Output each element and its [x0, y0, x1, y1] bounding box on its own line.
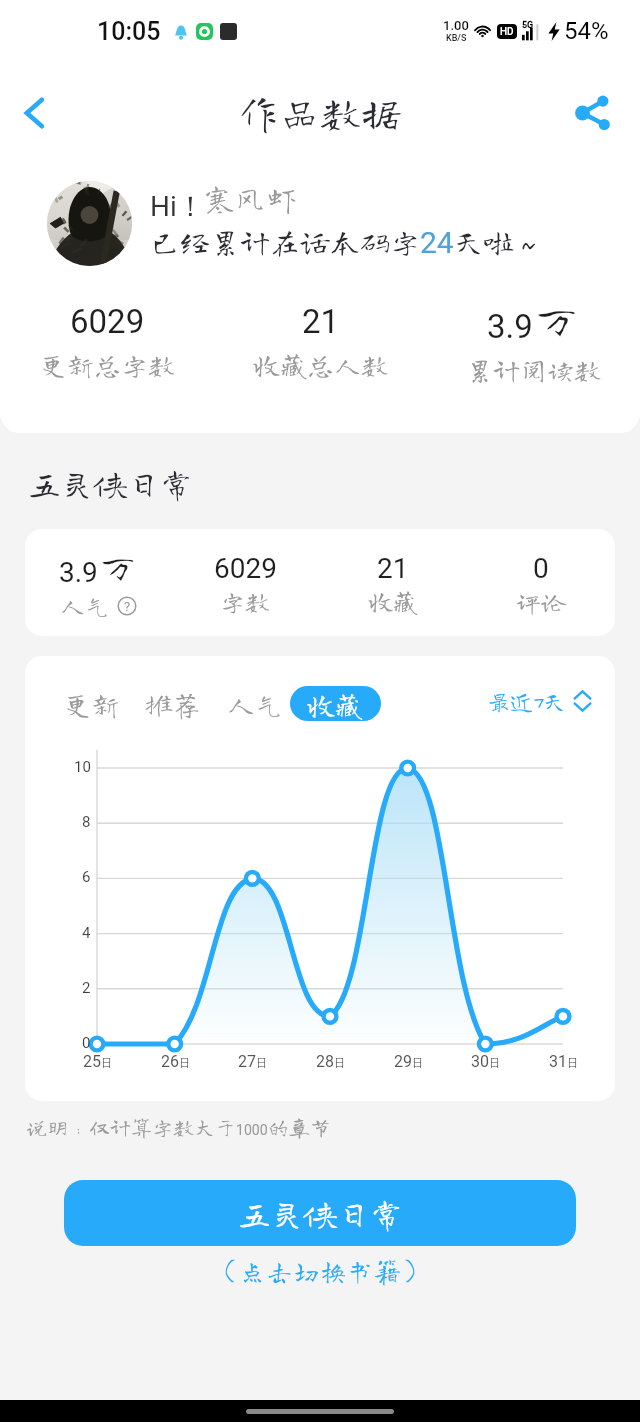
staticText: 推荐 [145, 690, 202, 718]
staticText: 29日 [394, 1052, 423, 1071]
staticText: 3.9万 [59, 547, 139, 589]
staticText: 21 [377, 552, 409, 585]
button[interactable]: 五灵侠日常 [64, 1180, 576, 1246]
button[interactable]: Back [0, 79, 68, 147]
staticText: 31日 [549, 1052, 578, 1071]
button[interactable]: 推荐 [145, 686, 202, 721]
staticText: 人气 [227, 690, 284, 718]
staticText: 更新 [64, 690, 121, 718]
button[interactable]: 更新 [64, 686, 121, 721]
staticText: 25日 [83, 1052, 112, 1071]
button[interactable]: 0 [467, 529, 615, 636]
staticText: 5G [522, 20, 534, 31]
button[interactable]: 6029 [0, 302, 214, 378]
staticText: Hi！ [150, 189, 205, 224]
staticText: ? [124, 599, 131, 614]
staticText: 30日 [471, 1052, 500, 1071]
staticText: 6029 [214, 552, 277, 585]
staticText: 已经累计在话本码字24天啦～ [150, 225, 544, 260]
button[interactable]: 收藏 [290, 686, 381, 721]
button[interactable]: 21 [214, 302, 427, 378]
staticText: 8 [82, 813, 91, 831]
button[interactable]: 21 [319, 529, 467, 636]
staticText: 五灵侠日常 [238, 1197, 403, 1230]
staticText: 收藏总人数 [253, 351, 388, 378]
staticText: 26日 [161, 1052, 190, 1071]
staticText: 收藏 [368, 589, 419, 614]
button[interactable]: 3.9万 [427, 296, 640, 383]
button[interactable]: Share [558, 79, 626, 147]
staticText: 评论 [516, 589, 567, 614]
staticText: 4 [82, 924, 91, 942]
staticText: 54% [564, 17, 609, 45]
button[interactable]: 最近7天 [487, 688, 591, 714]
staticText: 人气 [60, 593, 111, 618]
button[interactable]: 6029 [172, 529, 319, 636]
button[interactable]: Avatar [47, 181, 132, 266]
staticText: 3.9万 [487, 296, 581, 346]
staticText: 21 [302, 302, 340, 341]
staticText: 字数 [220, 589, 271, 614]
staticText: 0 [533, 552, 549, 585]
staticText: 更新总字数 [40, 351, 175, 378]
staticText: 6029 [70, 302, 145, 341]
staticText: 作品数据 [238, 92, 402, 133]
staticText: 最近7天 [487, 690, 566, 713]
button[interactable]: 人气 [227, 686, 284, 721]
staticText: 28日 [316, 1052, 345, 1071]
button[interactable]: 3.9万 [25, 529, 172, 636]
staticText: 五灵侠日常 [28, 467, 193, 500]
staticText: 累计阅读数 [466, 356, 601, 383]
staticText: 1.00 [443, 18, 469, 33]
staticText: 6 [82, 868, 91, 886]
button[interactable]: （点击切换书籍） [212, 1257, 428, 1284]
staticText: HD [500, 26, 514, 38]
staticText: 10:05 [97, 17, 161, 46]
staticText: 27日 [238, 1052, 267, 1071]
staticText: 0 [82, 1034, 91, 1052]
staticText: 寒风虾 [204, 182, 297, 213]
staticText: 说明：仅计算字数大于1000的章节 [26, 1117, 331, 1139]
staticText: 2 [82, 979, 91, 997]
staticText: 收藏 [307, 690, 364, 718]
staticText: KB/S [446, 33, 467, 44]
staticText: 10 [74, 758, 91, 776]
